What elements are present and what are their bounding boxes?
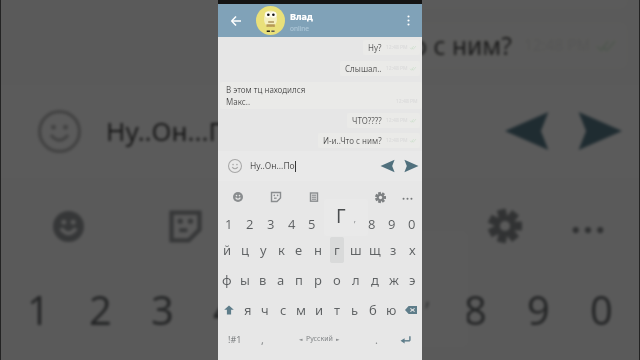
button[interactable]: Emoji — [53, 211, 84, 242]
button[interactable]: 1 — [218, 211, 239, 237]
button[interactable]: й — [218, 236, 236, 264]
button[interactable]: ЧТО???? — [406, 0, 627, 8]
button[interactable] — [322, 211, 342, 237]
button[interactable]: И-и..Что с ним? — [318, 133, 420, 148]
button[interactable]: 9 — [382, 211, 402, 237]
button[interactable] — [342, 211, 362, 237]
button[interactable]: И-и..Что с ним? — [317, 23, 627, 68]
button[interactable]: я — [239, 296, 256, 324]
button[interactable]: н — [308, 236, 327, 264]
button[interactable]: 4 — [193, 269, 255, 349]
button[interactable]: Emoji — [228, 159, 242, 173]
button[interactable]: More — [402, 192, 413, 203]
button[interactable]: 5 — [255, 269, 318, 349]
button[interactable]: More options — [398, 4, 418, 37]
button[interactable]: Settings — [375, 192, 386, 203]
button[interactable]: ЧТО???? — [347, 113, 420, 128]
button[interactable]: 2 — [239, 211, 260, 237]
button[interactable]: э — [403, 266, 422, 294]
button[interactable]: Ну? — [363, 40, 420, 55]
button[interactable]: к — [272, 236, 290, 264]
button[interactable]: Backspace — [400, 296, 422, 324]
staticText: Г — [336, 203, 346, 229]
button[interactable]: Previous — [377, 155, 399, 177]
button[interactable]: р — [308, 266, 327, 294]
button[interactable]: !#1 — [218, 324, 251, 354]
button[interactable]: в — [254, 266, 272, 294]
button[interactable]: е — [290, 236, 308, 264]
button[interactable]: з — [384, 236, 403, 264]
button[interactable]: п — [290, 266, 308, 294]
button[interactable]: 3 — [260, 211, 281, 237]
button[interactable]: ю — [382, 296, 400, 324]
button[interactable]: и — [310, 296, 328, 324]
button[interactable]: . — [365, 324, 388, 354]
button[interactable]: Emoji — [38, 110, 81, 153]
button[interactable]: 9 — [507, 269, 570, 349]
button[interactable]: 0 — [570, 269, 633, 349]
staticText: ЧТО???? — [421, 0, 512, 2]
button[interactable] — [318, 269, 381, 349]
button[interactable]: д — [365, 266, 384, 294]
button[interactable]: 5 — [302, 211, 322, 237]
button[interactable]: Send — [565, 97, 633, 165]
button[interactable]: 2 — [69, 269, 131, 349]
button[interactable]: 1 — [7, 269, 69, 349]
button[interactable]: More — [571, 209, 605, 243]
button[interactable] — [381, 269, 444, 349]
button[interactable]: Back — [228, 13, 244, 29]
button[interactable]: В этом тц находился — [220, 82, 422, 109]
button[interactable]: ш — [346, 236, 365, 264]
button[interactable]: г — [327, 236, 346, 264]
button[interactable]: 4 — [281, 211, 302, 237]
button[interactable]: к — [177, 346, 234, 360]
button[interactable]: т — [328, 296, 346, 324]
button[interactable]: Слышал.. — [340, 61, 420, 76]
button[interactable]: 3 — [131, 269, 193, 349]
button[interactable]: ◄ — [274, 324, 365, 354]
button[interactable]: б — [364, 296, 382, 324]
button[interactable]: Settings — [488, 209, 522, 243]
button[interactable]: м — [292, 296, 310, 324]
staticText: 3 — [151, 282, 174, 336]
button[interactable]: щ — [365, 236, 384, 264]
staticText: ► — [336, 337, 340, 342]
button[interactable]: ш — [405, 346, 462, 360]
button[interactable]: а — [272, 266, 290, 294]
button[interactable]: 0 — [402, 211, 422, 237]
button[interactable]: ь — [346, 296, 364, 324]
button[interactable]: Enter — [388, 324, 422, 354]
button[interactable]: Stickers — [271, 192, 281, 202]
button[interactable]: ы — [236, 266, 254, 294]
button[interactable]: Previous — [494, 97, 562, 165]
button[interactable]: Emoji — [233, 192, 243, 202]
button[interactable]: л — [346, 266, 365, 294]
button[interactable]: Clipboard — [309, 192, 319, 202]
button[interactable]: Send — [400, 155, 422, 177]
button[interactable]: о — [327, 266, 346, 294]
button[interactable]: х — [403, 236, 422, 264]
button[interactable]: ф — [218, 266, 236, 294]
button[interactable]: у — [254, 236, 272, 264]
button[interactable]: ч — [256, 296, 274, 324]
button[interactable]: с — [274, 296, 292, 324]
button[interactable]: , — [251, 324, 274, 354]
button[interactable]: 8 — [444, 269, 507, 349]
button[interactable]: 8 — [362, 211, 382, 237]
button[interactable]: Clipboard — [287, 211, 318, 242]
button[interactable]: Stickers — [170, 211, 201, 242]
staticText: 12:48 PM — [386, 137, 408, 144]
button[interactable]: ж — [384, 266, 403, 294]
staticText: 12:48 PM — [386, 117, 408, 124]
button[interactable]: ц — [236, 236, 254, 264]
button[interactable]: Shift — [218, 296, 239, 324]
